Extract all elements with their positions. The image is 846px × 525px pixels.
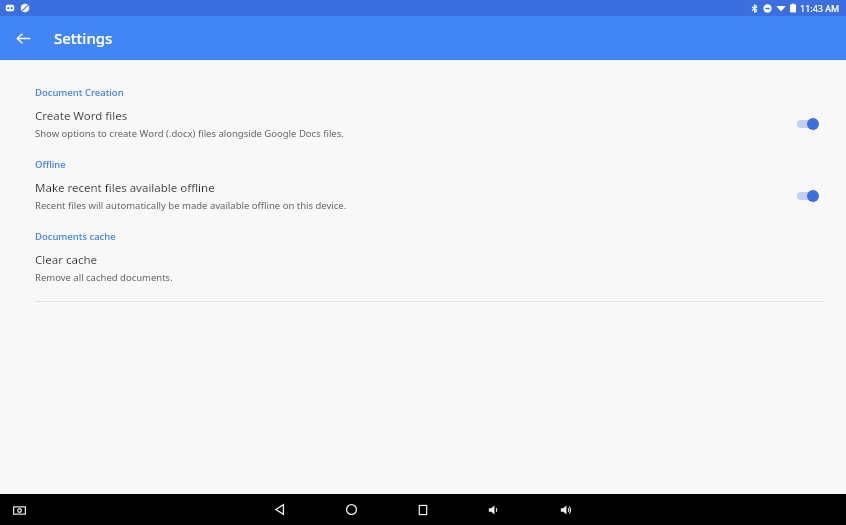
button[interactable]: Clear cache [0,243,846,288]
button[interactable]: Recent apps [387,494,459,525]
staticText: Settings [54,28,113,48]
button[interactable]: Create Word files [0,99,846,144]
button[interactable]: Back [8,23,38,53]
button[interactable]: Volume down [459,494,531,525]
button[interactable]: Toggle setting [794,114,824,134]
button[interactable]: Screenshot [10,501,28,519]
staticText: 11:43 AM [800,2,840,14]
button[interactable]: Volume up [531,494,603,525]
staticText: Make recent files available offline [35,180,215,196]
staticText: Documents cache [35,230,116,243]
staticText: Offline [35,158,66,171]
staticText: Remove all cached documents. [35,271,173,284]
button[interactable]: Home [315,494,387,525]
staticText: Create Word files [35,108,128,124]
staticText: Clear cache [35,252,97,268]
staticText: Recent files will automatically be made … [35,199,347,212]
button[interactable]: Toggle setting [794,186,824,206]
button[interactable]: Back [243,494,315,525]
button[interactable]: Make recent files available offline [0,171,846,216]
staticText: Show options to create Word (.docx) file… [35,127,344,140]
staticText: Document Creation [35,86,124,99]
